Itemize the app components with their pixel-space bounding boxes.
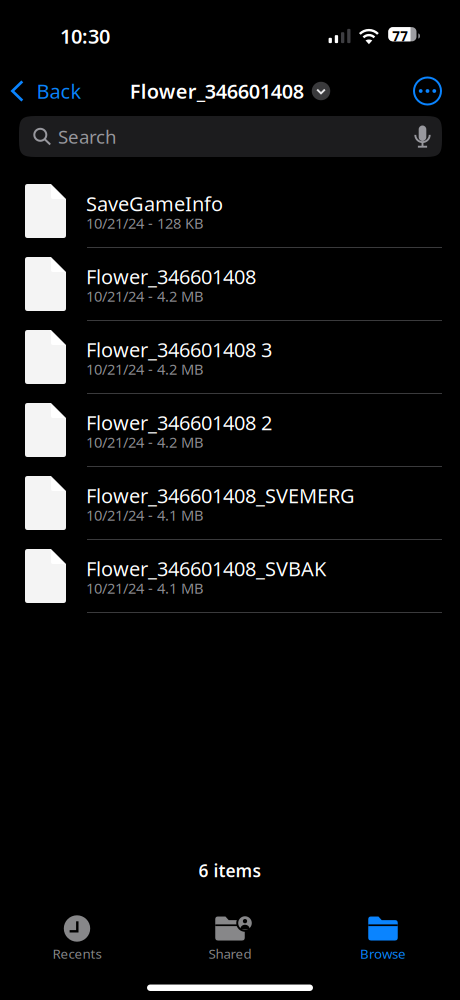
button[interactable]: Back	[0, 69, 91, 113]
staticText: 10/21/24 - 4.1 MB	[86, 505, 204, 525]
staticText: Search	[58, 124, 117, 149]
staticText: Flower_346601408_SVEMERG	[86, 482, 355, 509]
staticText: 10/21/24 - 128 KB	[86, 213, 204, 233]
button[interactable]: Shared	[153, 915, 306, 961]
staticText: 77	[392, 27, 408, 45]
button[interactable]: Flower_346601408_SVBAK	[0, 540, 460, 613]
staticText: Flower_346601408 2	[86, 409, 272, 436]
staticText: Recents	[52, 945, 101, 962]
staticText: Browse	[360, 945, 406, 962]
staticText: 10/21/24 - 4.2 MB	[86, 432, 204, 452]
staticText: 10/21/24 - 4.1 MB	[86, 578, 204, 598]
button[interactable]: Recents	[0, 915, 153, 961]
staticText: Back	[36, 78, 81, 104]
staticText: Shared	[208, 945, 251, 962]
staticText: 10:30	[60, 23, 110, 49]
staticText: 6 items	[198, 859, 261, 882]
staticText: Flower_346601408_SVBAK	[86, 555, 326, 582]
staticText: SaveGameInfo	[86, 190, 223, 217]
button[interactable]: Flower_346601408 3	[0, 321, 460, 394]
button[interactable]: Search	[19, 116, 442, 157]
button[interactable]: Flower_346601408_SVEMERG	[0, 467, 460, 540]
button[interactable]: Flower_346601408	[0, 248, 460, 321]
staticText: Flower_346601408 3	[86, 336, 272, 363]
staticText: 10/21/24 - 4.2 MB	[86, 359, 204, 379]
staticText: Flower_346601408	[130, 78, 304, 104]
button[interactable]: Browse	[306, 915, 459, 961]
staticText: Flower_346601408	[86, 263, 256, 290]
staticText: 10/21/24 - 4.2 MB	[86, 286, 204, 306]
button[interactable]: Flower_346601408 2	[0, 394, 460, 467]
button[interactable]: Flower_346601408	[130, 69, 330, 113]
button[interactable]: More options	[400, 69, 460, 113]
button[interactable]: SaveGameInfo	[0, 175, 460, 248]
